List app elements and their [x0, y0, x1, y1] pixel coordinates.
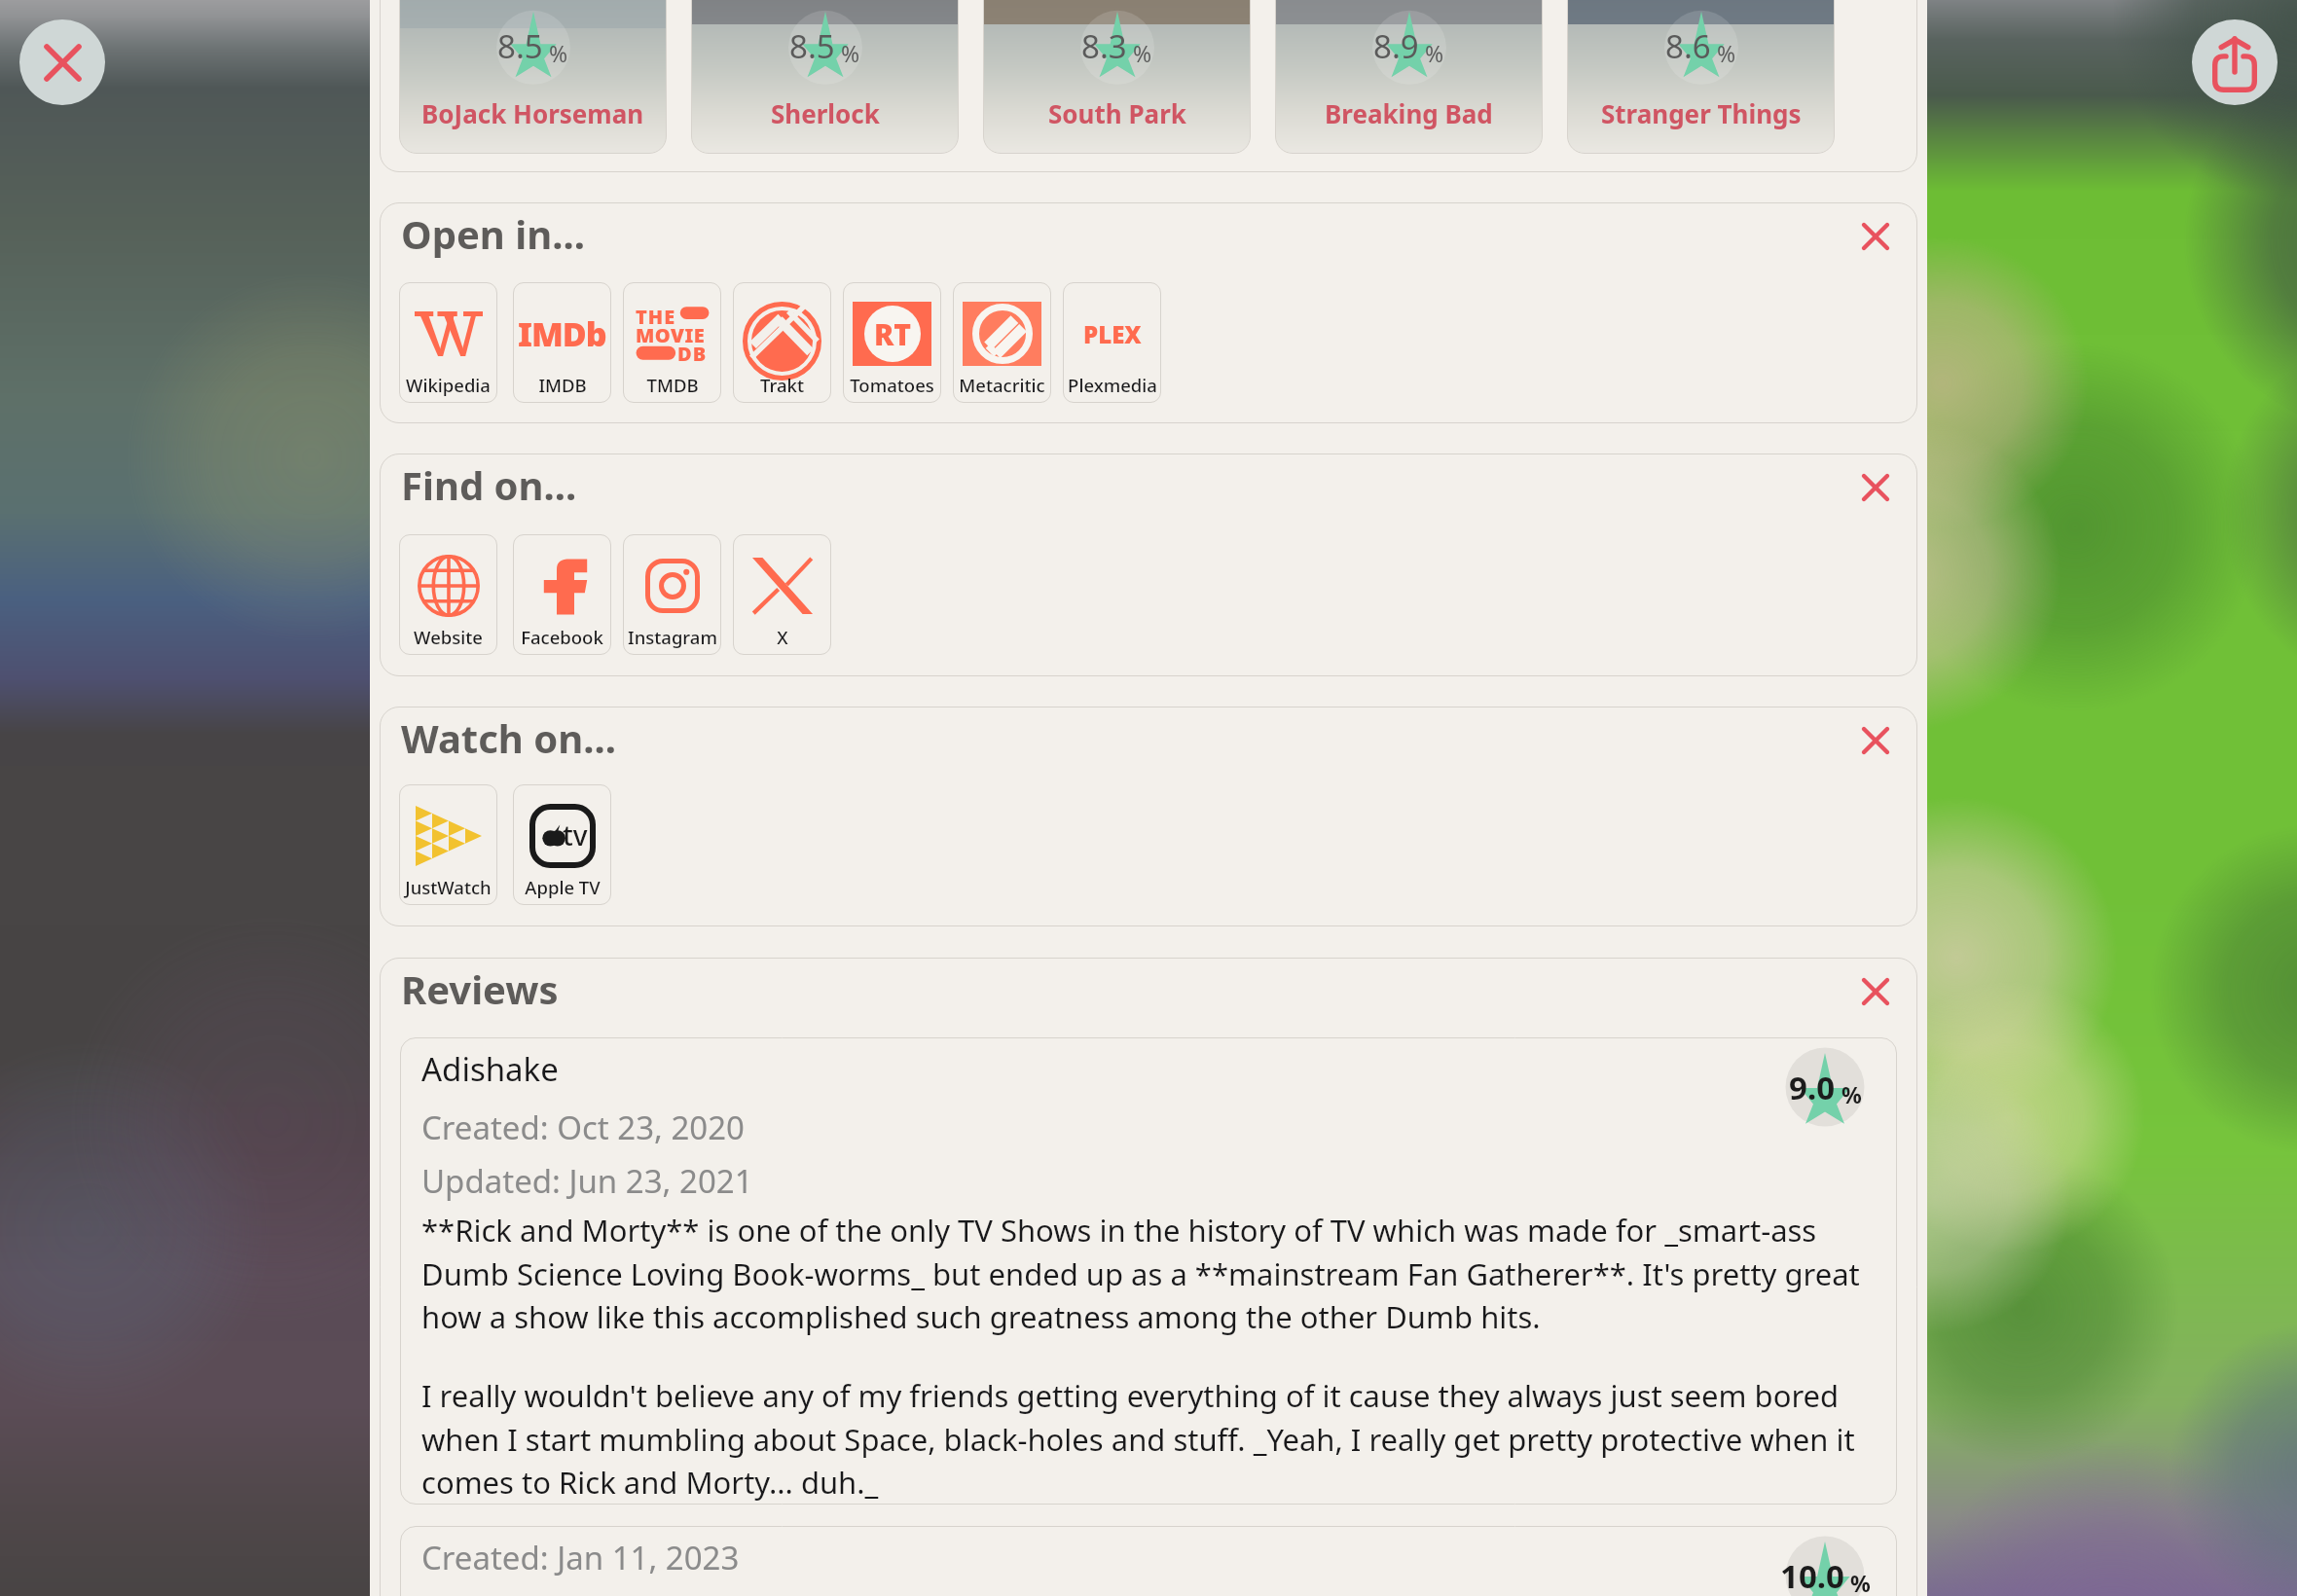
staticText: Open in...: [401, 207, 585, 260]
staticText: Tomatoes: [850, 373, 934, 397]
button[interactable]: Trakt: [733, 282, 831, 403]
staticText: RT: [874, 314, 912, 354]
button[interactable]: Dismiss Watch on...: [1848, 713, 1903, 768]
staticText: 9.0: [1789, 1066, 1836, 1109]
button[interactable]: JustWatch: [399, 784, 497, 905]
staticText: 8.9: [1373, 24, 1419, 68]
staticText: Website: [414, 625, 483, 649]
staticText: Adishake: [421, 1047, 559, 1091]
button[interactable]: tv: [513, 784, 611, 905]
button[interactable]: Dismiss Open in...: [1848, 209, 1903, 264]
button[interactable]: PLEX: [1063, 282, 1161, 403]
staticText: JustWatch: [405, 875, 492, 899]
staticText: X: [777, 625, 788, 649]
staticText: Updated: Jun 23, 2021: [421, 1159, 753, 1203]
staticText: Trakt: [760, 373, 804, 397]
staticText: 8.6: [1665, 24, 1711, 68]
button[interactable]: Dismiss Reviews: [1848, 964, 1903, 1019]
staticText: Created: Oct 23, 2020: [421, 1106, 745, 1149]
button[interactable]: Wikipedia: [399, 282, 497, 403]
staticText: %: [1127, 38, 1152, 68]
staticText: IMDb: [518, 311, 606, 356]
staticText: Watch on...: [401, 711, 616, 764]
button[interactable]: IMDb: [513, 282, 611, 403]
staticText: Plexmedia: [1068, 373, 1157, 397]
staticText: I really wouldn't believe any of my frie…: [421, 1375, 1867, 1503]
button[interactable]: 8.9: [1275, 0, 1543, 154]
staticText: Sherlock: [771, 96, 880, 130]
staticText: **Rick and Morty** is one of the only TV…: [421, 1210, 1867, 1337]
staticText: %: [1711, 38, 1736, 68]
staticText: BoJack Horseman: [421, 96, 644, 130]
staticText: DB: [677, 341, 708, 367]
button[interactable]: Website: [399, 534, 497, 655]
button[interactable]: 8.3: [983, 0, 1251, 154]
staticText: Metacritic: [959, 373, 1045, 397]
staticText: %: [1844, 1568, 1871, 1596]
staticText: Stranger Things: [1601, 96, 1802, 130]
button[interactable]: RT: [843, 282, 941, 403]
staticText: THE: [636, 304, 676, 330]
staticText: TMDB: [646, 373, 699, 397]
staticText: 8.3: [1081, 24, 1127, 68]
staticText: 8.5: [789, 24, 835, 68]
staticText: South Park: [1048, 96, 1186, 130]
button[interactable]: Adishake: [400, 1037, 1897, 1505]
button[interactable]: Share: [2192, 19, 2278, 105]
staticText: Breaking Bad: [1325, 96, 1493, 130]
button[interactable]: Close: [19, 19, 105, 105]
staticText: %: [543, 38, 568, 68]
staticText: PLEX: [1083, 318, 1142, 350]
staticText: tv: [563, 816, 588, 853]
staticText: Facebook: [521, 625, 603, 649]
button[interactable]: Instagram: [623, 534, 721, 655]
staticText: Instagram: [628, 625, 717, 649]
button[interactable]: THE: [623, 282, 721, 403]
staticText: Reviews: [401, 962, 559, 1015]
staticText: MOVIE: [636, 322, 706, 348]
staticText: %: [1836, 1079, 1862, 1109]
staticText: %: [1419, 38, 1444, 68]
button[interactable]: Dismiss Find on...: [1848, 460, 1903, 515]
staticText: %: [835, 38, 860, 68]
button[interactable]: Facebook: [513, 534, 611, 655]
staticText: 8.5: [497, 24, 543, 68]
staticText: IMDB: [538, 373, 587, 397]
button[interactable]: 8.5: [399, 0, 667, 154]
staticText: Apple TV: [525, 875, 601, 899]
button[interactable]: Metacritic: [953, 282, 1051, 403]
staticText: 10.0: [1780, 1554, 1844, 1596]
staticText: Created: Jan 11, 2023: [421, 1536, 740, 1579]
button[interactable]: 8.6: [1567, 0, 1835, 154]
button[interactable]: Created: Jan 11, 2023: [400, 1526, 1897, 1596]
staticText: Wikipedia: [406, 373, 491, 397]
button[interactable]: X: [733, 534, 831, 655]
staticText: Find on...: [401, 458, 577, 511]
button[interactable]: 8.5: [691, 0, 959, 154]
